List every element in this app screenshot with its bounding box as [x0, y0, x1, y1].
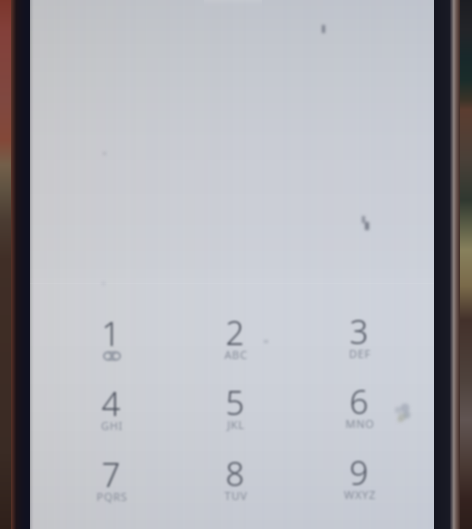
button[interactable]: 1 [50, 300, 172, 370]
button[interactable]: 4 [50, 370, 172, 440]
staticText: ABC [175, 347, 297, 362]
button[interactable]: 7 [50, 441, 172, 511]
button[interactable]: 5 [174, 369, 296, 439]
staticText: 5 [174, 380, 296, 425]
staticText: 4 [50, 381, 172, 426]
staticText: PQRS [51, 489, 173, 504]
staticText: 3 [298, 309, 420, 354]
staticText: 7 [50, 452, 172, 497]
staticText: 1 [50, 311, 172, 356]
staticText: TUV [175, 488, 297, 503]
staticText: 9 [298, 450, 420, 495]
staticText: 6 [298, 379, 420, 424]
button[interactable]: 2 [174, 299, 296, 369]
button[interactable]: 8 [174, 440, 296, 510]
staticText: GHI [51, 418, 173, 433]
button[interactable]: 3 [298, 298, 420, 368]
staticText: MNO [299, 416, 421, 431]
button[interactable]: 9 [298, 439, 420, 509]
staticText: WXYZ [299, 487, 421, 502]
staticText: DEF [299, 346, 421, 361]
staticText: JKL [175, 417, 297, 432]
staticText: 2 [174, 310, 296, 355]
button[interactable]: 6 [298, 368, 420, 438]
staticText: 8 [174, 451, 296, 496]
